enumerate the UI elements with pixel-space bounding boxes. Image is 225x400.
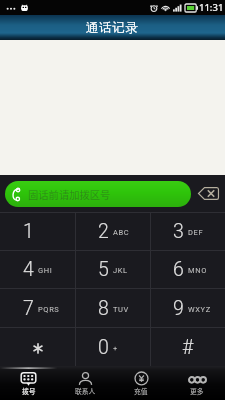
staticText: 联系人 <box>75 386 96 396</box>
staticText: ABC <box>113 228 130 237</box>
staticText: JKL <box>113 266 128 275</box>
button[interactable]: # <box>151 328 225 366</box>
staticText: DEF <box>188 228 204 237</box>
staticText: 5 <box>98 258 109 281</box>
button[interactable]: 4 <box>0 251 75 288</box>
staticText: 3 <box>173 220 184 243</box>
staticText: 0 <box>98 336 109 359</box>
staticText: MNO <box>188 266 207 275</box>
staticText: 8 <box>98 297 109 320</box>
staticText: 2 <box>98 220 109 243</box>
button[interactable]: Delete <box>192 175 225 212</box>
staticText: 固话前请加拨区号 <box>28 187 111 202</box>
button[interactable]: 9 <box>151 289 225 327</box>
button[interactable]: 5 <box>76 251 150 288</box>
button[interactable]: 拨号 <box>0 366 57 400</box>
button[interactable]: 更多 <box>169 366 225 400</box>
button[interactable]: 8 <box>76 289 150 327</box>
button[interactable] <box>0 328 75 366</box>
button[interactable]: 0 <box>76 328 150 366</box>
staticText: 9 <box>173 297 184 320</box>
staticText: TUV <box>113 305 129 314</box>
staticText: 4 <box>23 258 34 281</box>
staticText: 更多 <box>190 386 204 396</box>
button[interactable]: 7 <box>0 289 75 327</box>
button[interactable]: 联系人 <box>57 366 113 400</box>
staticText: 11:31 <box>199 1 224 14</box>
staticText: 1 <box>23 220 34 243</box>
button[interactable]: 1 <box>0 213 75 250</box>
staticText: 6 <box>173 258 184 281</box>
staticText: PQRS <box>38 305 60 314</box>
staticText: 拨号 <box>22 386 36 396</box>
button[interactable]: 2 <box>76 213 150 250</box>
button[interactable]: 充值 <box>113 366 169 400</box>
staticText: 充值 <box>134 386 148 396</box>
button[interactable]: 6 <box>151 251 225 288</box>
button[interactable]: 3 <box>151 213 225 250</box>
staticText: 7 <box>23 297 34 320</box>
button[interactable]: 固话前请加拨区号 <box>5 181 191 207</box>
staticText: + <box>113 344 118 353</box>
staticText: GHI <box>38 266 53 275</box>
staticText: 通话记录 <box>86 20 139 36</box>
staticText: WXYZ <box>188 305 211 314</box>
staticText: # <box>182 336 194 359</box>
